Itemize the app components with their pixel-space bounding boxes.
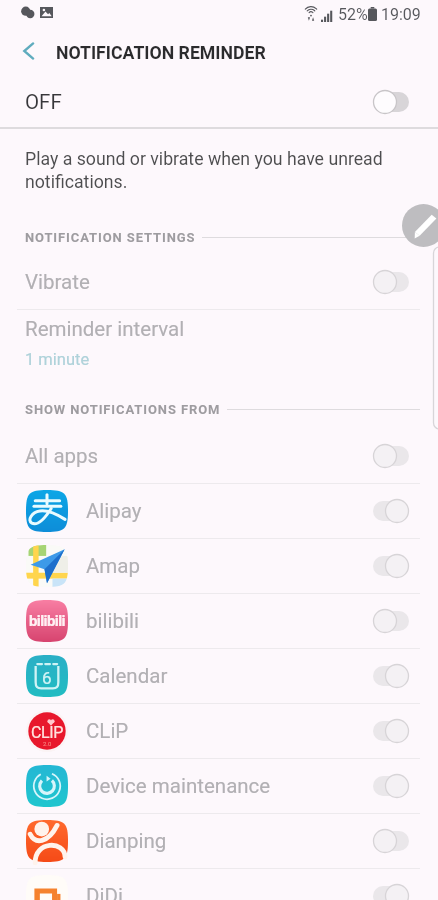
staticText: NOTIFICATION REMINDER (56, 43, 266, 64)
staticText: 1 minute (25, 350, 90, 369)
button[interactable]: Alipay (0, 484, 438, 538)
button[interactable]: Dianping (0, 814, 438, 868)
staticText: OFF (25, 90, 62, 114)
button[interactable]: 6 (0, 649, 438, 703)
staticText: CLiP (86, 719, 129, 743)
staticText: Vibrate (25, 270, 90, 294)
staticText: Reminder interval (25, 317, 185, 341)
staticText: Dianping (86, 829, 167, 853)
button[interactable]: DiDi (0, 869, 438, 900)
staticText: DiDi (86, 884, 123, 900)
staticText: 6 (42, 668, 52, 688)
button[interactable]: CLIP (0, 704, 438, 758)
staticText: Device maintenance (86, 774, 271, 798)
button[interactable]: Navigate up (0, 31, 54, 75)
staticText: Play a sound or vibrate when you have un… (25, 149, 387, 193)
staticText: 2.0 (43, 740, 52, 747)
button[interactable]: OFF (0, 76, 438, 128)
button[interactable]: Reminder interval (0, 312, 438, 374)
staticText: Calendar (86, 664, 168, 688)
staticText: 52% (338, 5, 368, 24)
button[interactable]: All apps (0, 429, 438, 483)
staticText: CLIP (31, 723, 63, 742)
button[interactable]: Edit (402, 204, 438, 247)
button[interactable]: Device maintenance (0, 759, 438, 813)
staticText: All apps (25, 444, 99, 468)
button[interactable]: bilibili (0, 594, 438, 648)
staticText: Amap (86, 554, 141, 578)
button[interactable]: Vibrate (0, 255, 438, 309)
staticText: bilibili (86, 609, 139, 633)
button[interactable]: Amap (0, 539, 438, 593)
staticText: bilibili (29, 612, 65, 630)
staticText: NOTIFICATION SETTINGS (25, 230, 196, 245)
staticText: 19:09 (381, 5, 421, 24)
staticText: SHOW NOTIFICATIONS FROM (25, 402, 221, 417)
staticText: Alipay (86, 499, 142, 523)
